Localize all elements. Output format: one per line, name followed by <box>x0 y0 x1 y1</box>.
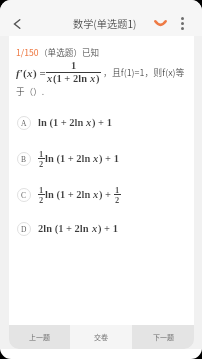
button[interactable]: More options <box>172 13 193 34</box>
staticText: ′( <box>20 67 27 79</box>
staticText: x <box>86 117 92 129</box>
staticText: 1 <box>39 185 44 194</box>
staticText: 交卷 <box>94 332 108 342</box>
button[interactable]: Back <box>5 12 28 35</box>
staticText: 2 <box>39 195 44 204</box>
button[interactable]: D <box>17 222 190 236</box>
staticText: f <box>16 67 20 79</box>
staticText: ) + <box>99 189 114 201</box>
staticText: x <box>27 67 33 79</box>
staticText: C <box>21 191 27 199</box>
staticText: 2 <box>115 195 120 204</box>
button[interactable]: 交卷 <box>70 325 132 349</box>
staticText: D <box>21 225 27 233</box>
button[interactable]: C <box>17 185 190 204</box>
staticText: x <box>93 153 99 165</box>
staticText: 数学(单选题1) <box>73 16 137 31</box>
staticText: x <box>47 73 53 85</box>
staticText: B <box>21 155 27 163</box>
staticText: ) = <box>33 67 46 79</box>
staticText: ) + 1 <box>99 153 119 165</box>
staticText: x <box>93 189 99 201</box>
staticText: x <box>92 223 98 235</box>
staticText: (1 + 2ln <box>53 73 90 85</box>
staticText: ) + 1 <box>92 117 112 129</box>
staticText: x <box>90 73 96 85</box>
staticText: 2 <box>39 159 44 168</box>
staticText: ln (1 + 2ln <box>45 189 93 201</box>
staticText: 1 <box>39 149 44 158</box>
staticText: ，且f(1)=1，则f(x)等 <box>103 66 185 79</box>
staticText: 2ln (1 + 2ln <box>38 223 92 235</box>
button[interactable]: 下一题 <box>132 325 194 349</box>
button[interactable]: 上一题 <box>9 325 70 349</box>
button[interactable]: B <box>17 149 190 168</box>
staticText: 1/150 <box>16 46 39 58</box>
staticText: 于（）. <box>16 85 45 97</box>
staticText: A <box>21 119 27 127</box>
staticText: 上一题 <box>29 332 50 342</box>
button[interactable]: Favorite <box>152 15 169 32</box>
staticText: ln (1 + 2ln <box>45 153 93 165</box>
staticText: 1 <box>115 185 120 194</box>
staticText: 下一题 <box>153 332 174 342</box>
button[interactable]: A <box>17 116 190 130</box>
staticText: ln (1 + 2ln <box>38 117 86 129</box>
staticText: ) + 1 <box>98 223 118 235</box>
staticText: （单选题）已知 <box>39 46 100 58</box>
staticText: ) <box>96 73 100 85</box>
staticText: 1 <box>71 60 77 72</box>
